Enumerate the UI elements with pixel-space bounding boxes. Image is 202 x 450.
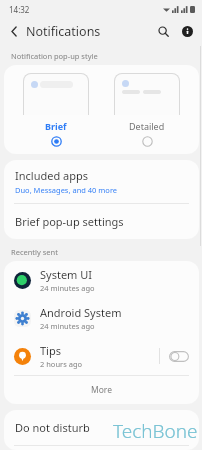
staticText: Android System <box>40 305 122 320</box>
staticText: 14:32 <box>9 4 30 15</box>
staticText: Notifications <box>26 23 101 40</box>
staticText: More <box>91 384 112 396</box>
button[interactable]: Android System <box>4 299 199 337</box>
staticText: Notification pop-up style <box>11 51 98 61</box>
staticText: Tips <box>40 343 61 358</box>
button[interactable]: Toggle Tips notifications <box>167 349 191 364</box>
staticText: Brief <box>45 120 67 132</box>
button[interactable]: Back <box>4 21 24 41</box>
button[interactable]: Included apps <box>4 160 199 203</box>
staticText: 24 minutes ago <box>40 321 95 331</box>
staticText: Do not disturb <box>15 420 90 435</box>
button[interactable]: Brief <box>17 72 95 148</box>
staticText: Recently sent <box>11 247 58 257</box>
staticText: 24 minutes ago <box>40 283 95 293</box>
button[interactable]: Brief pop-up settings <box>4 204 199 239</box>
staticText: System UI <box>40 267 93 282</box>
staticText: Brief pop-up settings <box>15 214 124 229</box>
button[interactable]: Detailed <box>108 72 186 148</box>
button[interactable]: Information <box>178 22 196 40</box>
button[interactable]: System UI <box>4 261 199 299</box>
button[interactable]: Search <box>154 22 172 40</box>
button[interactable]: Tips <box>4 337 199 375</box>
staticText: 2 hours ago <box>40 359 83 369</box>
staticText: Included apps <box>15 168 89 183</box>
button[interactable]: Do not disturb <box>4 410 199 445</box>
staticText: Detailed <box>129 120 165 132</box>
staticText: Duo, Messages, and 40 more <box>15 185 118 195</box>
button[interactable]: More <box>4 376 199 404</box>
staticText: TechBone <box>113 418 198 444</box>
